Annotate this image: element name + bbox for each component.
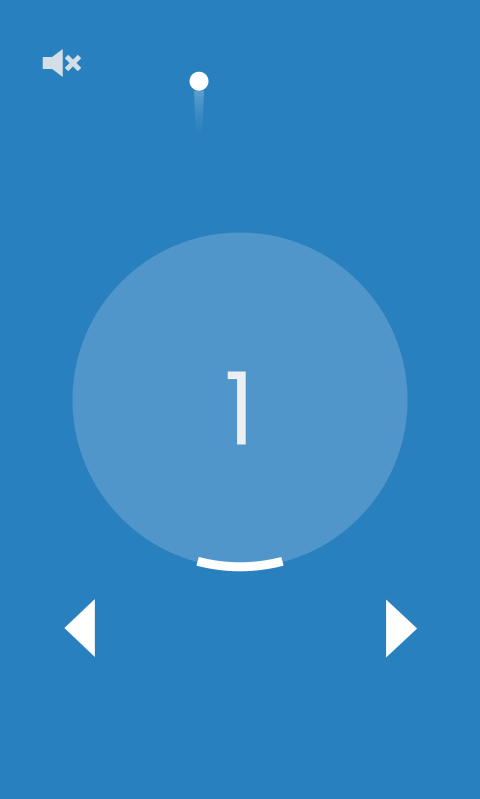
- button[interactable]: Rotate right: [354, 580, 450, 676]
- button[interactable]: Rotate left: [32, 580, 128, 676]
- button[interactable]: Mute: [34, 41, 90, 85]
